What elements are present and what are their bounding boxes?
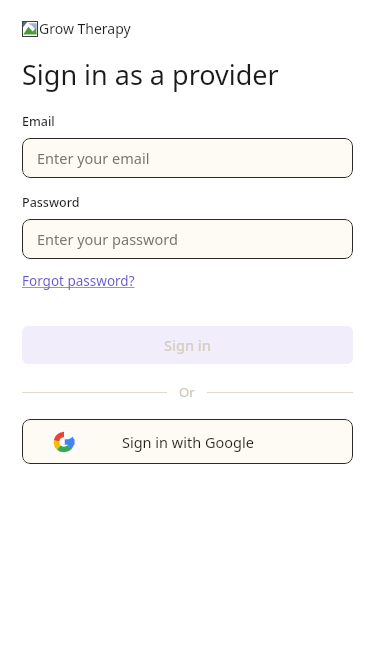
staticText: Password: [22, 194, 80, 211]
button[interactable]: Google logo: [22, 419, 353, 464]
button[interactable]: Enter your email: [22, 138, 353, 178]
staticText: Sign in with Google: [122, 432, 254, 452]
staticText: Forgot password?: [22, 272, 135, 290]
button[interactable]: Grow Therapy: [22, 19, 131, 38]
staticText: Enter your email: [37, 148, 150, 168]
staticText: Sign in as a provider: [22, 56, 279, 93]
button[interactable]: Sign in: [22, 326, 353, 364]
other: Google logo: [53, 431, 75, 453]
staticText: Sign in: [164, 335, 211, 355]
staticText: Grow Therapy: [39, 19, 131, 38]
staticText: Email: [22, 113, 55, 130]
button[interactable]: Forgot password?: [22, 272, 135, 290]
button[interactable]: Enter your password: [22, 219, 353, 259]
staticText: Enter your password: [37, 229, 178, 249]
staticText: Or: [179, 383, 195, 401]
